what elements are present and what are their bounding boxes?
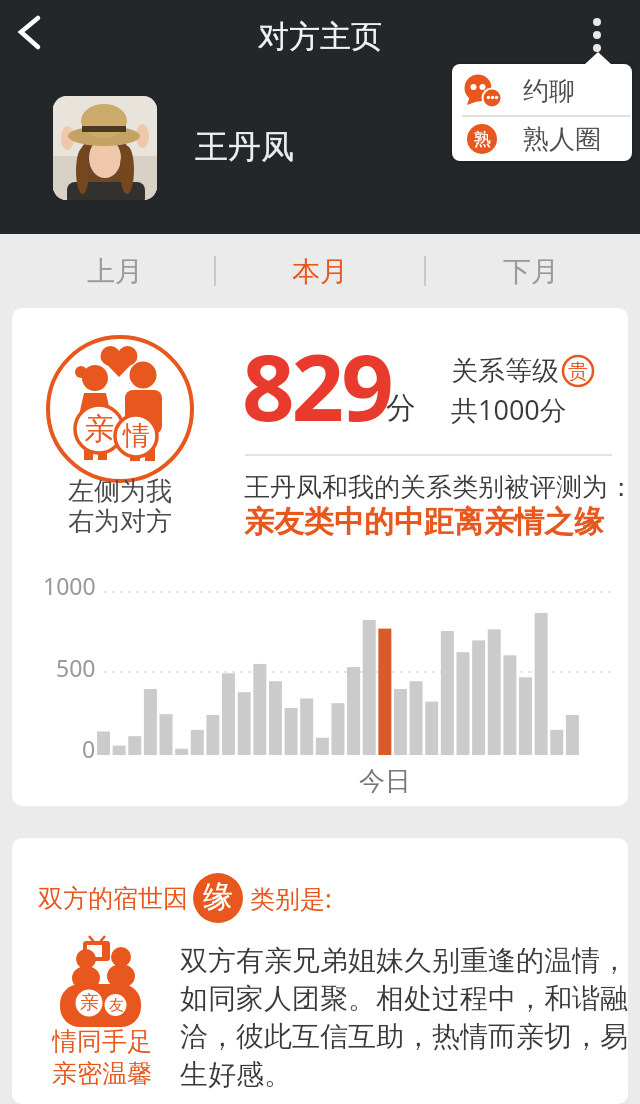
- staticText: 熟: [474, 129, 491, 150]
- staticText: 情同手足: [52, 1026, 152, 1056]
- staticText: 829: [242, 323, 391, 448]
- staticText: 情: [123, 419, 150, 453]
- staticText: 下月: [503, 254, 559, 289]
- staticText: 0: [82, 733, 96, 764]
- button[interactable]: [53, 96, 157, 200]
- staticText: 分: [386, 389, 416, 427]
- button[interactable]: 本月: [250, 243, 390, 299]
- staticText: 亲: [84, 410, 114, 448]
- staticText: 今日: [359, 765, 411, 798]
- button[interactable]: [577, 12, 621, 60]
- staticText: 熟人圈: [523, 123, 601, 156]
- staticText: 双方有亲兄弟姐妹久别重逢的温情，: [180, 943, 628, 978]
- button[interactable]: 上月: [45, 243, 185, 299]
- staticText: 左侧为我: [68, 475, 172, 507]
- button[interactable]: [8, 10, 60, 62]
- staticText: 缘: [203, 878, 233, 916]
- staticText: 贵: [568, 359, 588, 384]
- staticText: 王丹凤和我的关系类别被评测为：: [244, 471, 634, 504]
- staticText: 亲: [80, 991, 99, 1015]
- button[interactable]: 下月: [461, 243, 601, 299]
- staticText: 类别是:: [250, 881, 332, 915]
- staticText: 上月: [87, 254, 143, 289]
- staticText: 1000: [43, 570, 96, 601]
- button[interactable]: [452, 116, 632, 161]
- button[interactable]: [452, 64, 632, 114]
- staticText: 友: [109, 996, 124, 1015]
- staticText: 共1000分: [451, 391, 567, 428]
- staticText: 洽，彼此互信互助，热情而亲切，易: [180, 1019, 628, 1054]
- staticText: 亲友类中的中距离亲情之缘: [244, 503, 604, 541]
- staticText: 生好感。: [180, 1057, 292, 1092]
- staticText: 亲密温馨: [52, 1058, 152, 1088]
- staticText: 500: [56, 652, 96, 683]
- staticText: 王丹凤: [195, 126, 294, 168]
- staticText: 对方主页: [258, 17, 382, 56]
- staticText: 约聊: [523, 75, 575, 108]
- staticText: 本月: [292, 254, 348, 289]
- staticText: 关系等级: [451, 354, 559, 388]
- staticText: 双方的宿世因: [38, 883, 188, 914]
- staticText: 右为对方: [68, 505, 172, 537]
- staticText: 如同家人团聚。相处过程中，和谐融: [180, 981, 628, 1016]
